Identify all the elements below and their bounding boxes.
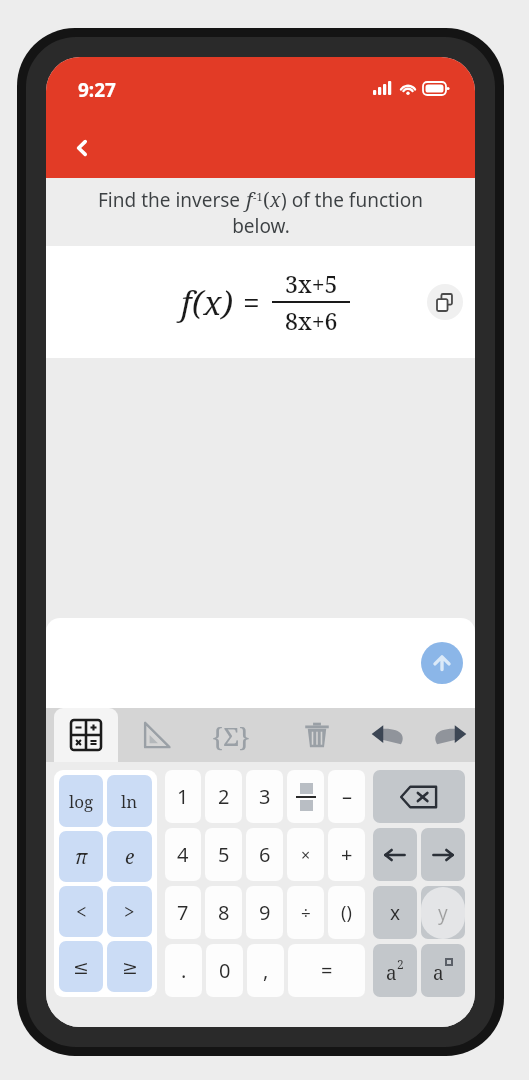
staticText: () — [341, 900, 352, 925]
button[interactable]: e — [107, 831, 152, 882]
button[interactable]: Undo — [352, 708, 424, 762]
staticText: a — [386, 960, 397, 986]
button[interactable]: Submit — [421, 642, 463, 684]
staticText: 4 — [177, 841, 189, 868]
staticText: (x) — [192, 280, 233, 325]
staticText: = — [243, 282, 260, 323]
button[interactable]: 4 — [165, 828, 201, 881]
button[interactable]: = — [288, 944, 365, 997]
button[interactable]: π — [59, 831, 103, 882]
staticText: = — [321, 957, 333, 984]
button[interactable]: Fraction — [287, 770, 324, 823]
staticText: 8 — [218, 899, 230, 926]
staticText: ln — [121, 790, 138, 813]
button[interactable]: 0 — [206, 944, 243, 997]
button[interactable]: ln — [107, 775, 152, 827]
button[interactable]: Copy — [427, 284, 463, 320]
staticText: 2 — [397, 956, 404, 972]
button[interactable]: 3 — [246, 770, 283, 823]
button[interactable]: 7 — [165, 886, 201, 939]
button[interactable]: 5 — [205, 828, 242, 881]
staticText: 0 — [219, 957, 231, 984]
button[interactable]: ≥ — [107, 941, 152, 992]
button[interactable]: Clear — [282, 708, 352, 762]
staticText: ≤ — [73, 956, 89, 978]
button[interactable]: x — [373, 886, 417, 939]
staticText: ) of the function — [281, 187, 424, 213]
staticText: ( — [263, 187, 270, 213]
staticText: 7 — [177, 899, 189, 926]
button[interactable]: Backspace — [373, 770, 465, 823]
staticText: 6 — [259, 841, 271, 868]
button[interactable]: – — [328, 770, 365, 823]
staticText: y — [438, 900, 448, 926]
staticText: 9:27 — [78, 77, 116, 103]
button[interactable]: y — [421, 886, 465, 939]
button[interactable]: Calculator keypad — [54, 708, 118, 762]
button[interactable]: Back — [60, 126, 104, 170]
staticText: 8x+6 — [285, 305, 338, 336]
button[interactable]: 2 — [205, 770, 242, 823]
staticText: 9 — [259, 899, 271, 926]
staticText: a — [433, 960, 444, 986]
staticText: 2 — [218, 783, 230, 810]
button[interactable]: . — [165, 944, 202, 997]
button[interactable]: + — [328, 828, 365, 881]
staticText: π — [75, 844, 88, 870]
button[interactable]: log — [59, 775, 103, 827]
button[interactable]: 1 — [165, 770, 201, 823]
staticText: 3 — [259, 783, 271, 810]
button[interactable]: , — [247, 944, 284, 997]
button[interactable]: ÷ — [287, 886, 324, 939]
staticText: -1 — [253, 189, 263, 204]
staticText: < — [76, 899, 87, 925]
button[interactable]: Symbols — [193, 708, 268, 762]
staticText: . — [181, 957, 187, 984]
button[interactable]: () — [328, 886, 365, 939]
staticText: e — [125, 844, 135, 870]
staticText: f — [246, 186, 253, 213]
staticText: x — [270, 187, 281, 213]
staticText: – — [342, 783, 352, 810]
staticText: > — [124, 899, 135, 925]
button[interactable]: Move left — [373, 828, 417, 881]
staticText: Find the inverse — [98, 187, 246, 213]
staticText: x — [390, 900, 401, 926]
button[interactable]: a squared — [373, 944, 417, 997]
button[interactable]: a to the power — [421, 944, 465, 997]
staticText: f — [181, 280, 192, 325]
staticText: 5 — [218, 841, 230, 868]
staticText: + — [341, 841, 353, 868]
button[interactable]: 9 — [246, 886, 283, 939]
button[interactable]: Move right — [421, 828, 465, 881]
staticText: log — [69, 790, 94, 813]
button[interactable]: × — [287, 828, 324, 881]
button[interactable]: 8 — [205, 886, 242, 939]
staticText: below. — [232, 213, 290, 239]
button[interactable]: Redo — [424, 708, 475, 762]
staticText: , — [263, 957, 269, 984]
button[interactable]: > — [107, 886, 152, 937]
staticText: {Σ} — [212, 718, 250, 753]
staticText: ≥ — [122, 956, 138, 978]
button[interactable]: ≤ — [59, 941, 103, 992]
staticText: 1 — [177, 783, 189, 810]
staticText: ÷ — [301, 901, 311, 924]
button[interactable]: 6 — [246, 828, 283, 881]
button[interactable]: Geometry — [118, 708, 193, 762]
staticText: 3x+5 — [285, 268, 338, 299]
button[interactable]: < — [59, 886, 103, 937]
staticText: × — [301, 844, 311, 866]
